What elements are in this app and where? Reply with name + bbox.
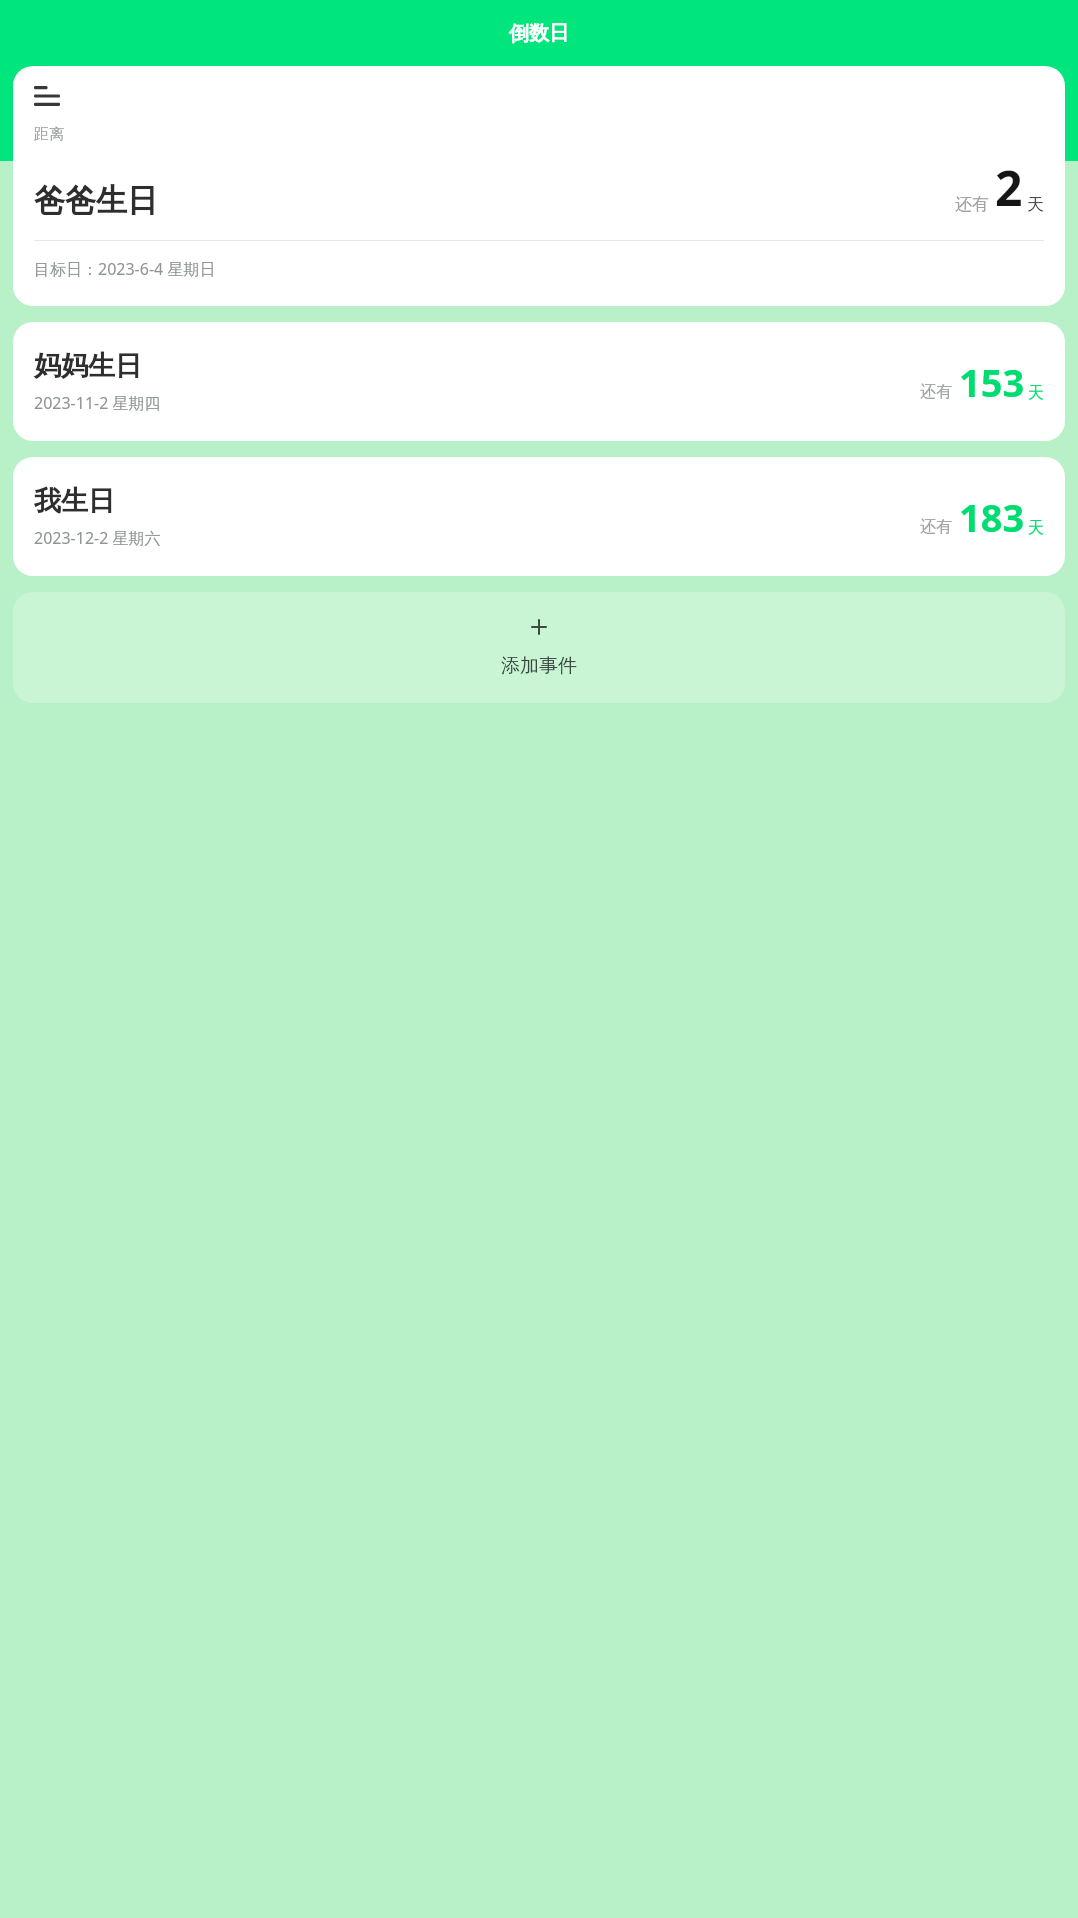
staticText: 距离: [34, 125, 64, 144]
staticText: 2: [995, 155, 1023, 220]
button[interactable]: Add: [13, 592, 1065, 703]
other: Add: [529, 617, 549, 637]
staticText: 添加事件: [501, 654, 577, 678]
staticText: 爸爸生日: [34, 181, 158, 220]
staticText: 天: [1028, 383, 1044, 403]
staticText: 倒数日: [509, 21, 569, 46]
staticText: 还有: [955, 194, 989, 215]
staticText: 2023-11-2 星期四: [34, 392, 161, 414]
button[interactable]: Menu: [13, 66, 1065, 306]
staticText: 153: [959, 356, 1025, 408]
staticText: 妈妈生日: [34, 349, 142, 383]
staticText: 天: [1028, 518, 1044, 538]
staticText: 天: [1027, 194, 1044, 215]
staticText: 183: [959, 491, 1025, 543]
staticText: 2023-12-2 星期六: [34, 527, 161, 549]
button[interactable]: 我生日: [13, 457, 1065, 576]
staticText: 还有: [920, 517, 952, 537]
staticText: 我生日: [34, 484, 115, 518]
button[interactable]: Menu: [34, 83, 66, 109]
staticText: 目标日：2023-6-4 星期日: [34, 258, 216, 280]
button[interactable]: 妈妈生日: [13, 322, 1065, 441]
staticText: 还有: [920, 382, 952, 402]
